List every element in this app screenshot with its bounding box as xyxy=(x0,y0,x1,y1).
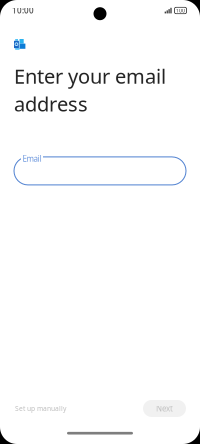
staticText: Set up manually xyxy=(15,404,66,413)
staticText: 10:00 xyxy=(12,5,34,16)
staticText: Next xyxy=(156,403,173,414)
button[interactable]: Next xyxy=(143,400,186,417)
staticText: Email xyxy=(22,153,41,164)
staticText: Enter your email address xyxy=(14,63,166,117)
staticText: 100 xyxy=(176,7,185,14)
button[interactable]: Outlook xyxy=(14,39,25,50)
button[interactable]: Email xyxy=(14,154,186,185)
button[interactable]: Set up manually xyxy=(14,399,67,418)
